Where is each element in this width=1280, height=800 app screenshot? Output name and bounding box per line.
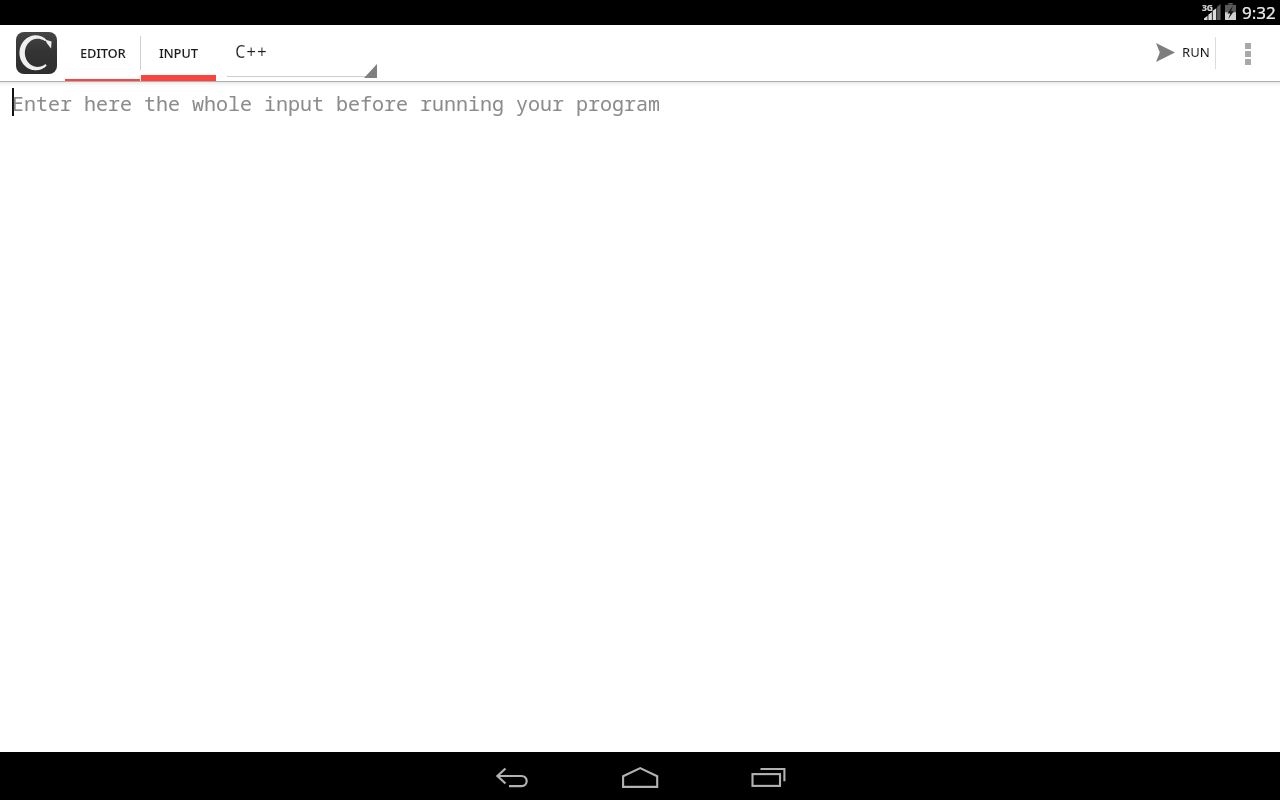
staticText: INPUT: [159, 44, 198, 62]
staticText: RUN: [1182, 43, 1210, 61]
staticText: C++: [235, 39, 268, 64]
button[interactable]: Recent apps: [732, 752, 804, 800]
staticText: 3G: [1202, 2, 1214, 14]
button[interactable]: Back: [476, 752, 548, 800]
button[interactable]: Language: C++: [227, 25, 377, 81]
staticText: Enter here the whole input before runnin…: [12, 90, 660, 117]
button[interactable]: Home: [604, 752, 676, 800]
button[interactable]: EDITOR: [65, 25, 140, 81]
button[interactable]: INPUT: [141, 25, 216, 81]
button[interactable]: RUN: [1156, 25, 1210, 82]
button[interactable]: More options: [1232, 25, 1264, 82]
staticText: EDITOR: [80, 44, 126, 62]
button[interactable]: App logo: [16, 32, 57, 74]
staticText: 9:32: [1242, 1, 1276, 24]
